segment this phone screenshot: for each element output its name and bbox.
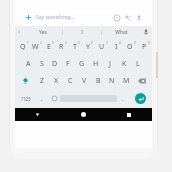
button[interactable]: I [109, 38, 123, 55]
button[interactable]: N [105, 72, 119, 89]
staticText: C [68, 76, 73, 86]
button[interactable]: Y [81, 38, 95, 55]
button[interactable]: B [91, 72, 105, 89]
button[interactable]: Sticker [123, 13, 132, 22]
button[interactable]: Recents [106, 108, 152, 121]
staticText: F [66, 59, 70, 69]
staticText: , [41, 95, 43, 103]
staticText: I [115, 42, 118, 52]
staticText: 7 [106, 41, 108, 45]
button[interactable]: V [77, 72, 91, 89]
staticText: 0 [148, 41, 150, 45]
button[interactable]: L [131, 55, 145, 72]
staticText: W [32, 42, 39, 52]
button[interactable]: . [117, 91, 129, 106]
button[interactable]: ?123 [16, 91, 36, 106]
button[interactable]: Yes [23, 26, 62, 38]
button[interactable]: Z [35, 72, 49, 89]
staticText: H [93, 59, 99, 69]
button[interactable]: R [55, 38, 68, 55]
button[interactable]: A [22, 55, 35, 72]
button[interactable]: D [48, 55, 61, 72]
button[interactable]: X [49, 72, 63, 89]
staticText: Say something… [36, 14, 75, 21]
staticText: E [47, 42, 51, 52]
staticText: T [73, 42, 77, 52]
staticText: Q [20, 42, 26, 52]
staticText: J [109, 59, 111, 69]
staticText: D [52, 59, 58, 69]
staticText: V [82, 76, 87, 86]
staticText: R [59, 42, 64, 52]
button[interactable]: G [75, 55, 89, 72]
staticText: Y [86, 42, 90, 52]
button[interactable]: Add [24, 13, 33, 22]
staticText: ?123 [21, 96, 31, 102]
button[interactable]: O [123, 38, 137, 55]
button[interactable]: Voice typing [140, 26, 152, 38]
button[interactable]: U [95, 38, 109, 55]
staticText: L [136, 59, 140, 69]
button[interactable]: Add [20, 10, 147, 25]
button[interactable]: Backspace [133, 72, 151, 89]
button[interactable]: H [89, 55, 103, 72]
staticText: 5 [78, 41, 80, 45]
staticText: G [79, 59, 85, 69]
staticText: 2 [40, 41, 42, 45]
button[interactable]: Change language [48, 91, 60, 106]
staticText: N [109, 76, 115, 86]
button[interactable]: P [137, 38, 151, 55]
staticText: Z [40, 76, 45, 86]
button[interactable]: Shift [16, 72, 35, 89]
button[interactable]: S [35, 55, 48, 72]
button[interactable]: , [36, 91, 48, 106]
button[interactable]: W [29, 38, 42, 55]
staticText: K [122, 59, 127, 69]
staticText: 4 [65, 41, 67, 45]
button[interactable]: Emoji [112, 13, 121, 22]
staticText: 3 [52, 41, 54, 45]
staticText: O [127, 42, 133, 52]
staticText: . [122, 95, 124, 103]
staticText: Yes [39, 29, 47, 36]
button[interactable]: More suggestions [15, 26, 23, 38]
button[interactable]: J [103, 55, 117, 72]
button[interactable]: Q [16, 38, 29, 55]
staticText: 6 [91, 41, 93, 45]
button[interactable]: Hide keyboard [15, 108, 60, 121]
staticText: A [26, 59, 31, 69]
staticText: M [123, 76, 130, 86]
staticText: S [40, 59, 44, 69]
button[interactable]: T [68, 38, 81, 55]
button[interactable]: What [102, 26, 140, 38]
staticText: X [54, 76, 59, 86]
button[interactable]: M [119, 72, 133, 89]
button[interactable]: Voice input [134, 13, 143, 22]
staticText: P [142, 42, 147, 52]
button[interactable]: Enter [129, 91, 151, 106]
button[interactable]: F [61, 55, 75, 72]
staticText: I [81, 29, 83, 36]
button[interactable]: I [63, 26, 101, 38]
staticText: U [99, 42, 105, 52]
button[interactable]: K [117, 55, 131, 72]
staticText: What [115, 29, 128, 36]
staticText: 8 [119, 41, 121, 45]
button[interactable]: Home [60, 108, 106, 121]
staticText: B [96, 76, 101, 86]
staticText: 1 [27, 41, 29, 45]
button[interactable]: E [42, 38, 55, 55]
button[interactable]: C [63, 72, 77, 89]
staticText: 9 [134, 41, 136, 45]
